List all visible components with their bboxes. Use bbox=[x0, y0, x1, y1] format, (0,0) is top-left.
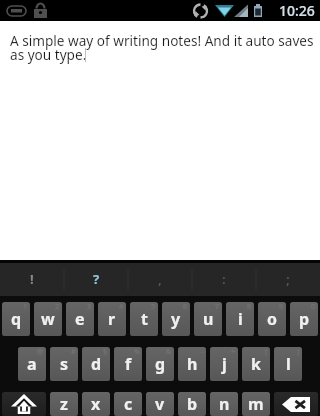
staticText: b bbox=[187, 393, 198, 415]
staticText: A simple way of writing notes! And it au… bbox=[10, 31, 314, 64]
button[interactable]: ? bbox=[64, 263, 128, 296]
staticText: i bbox=[238, 308, 243, 330]
staticText: v bbox=[155, 393, 165, 415]
staticText: ( bbox=[265, 347, 268, 357]
button[interactable]: 4 bbox=[98, 302, 126, 336]
staticText: + bbox=[231, 347, 236, 357]
staticText: p bbox=[299, 308, 310, 330]
staticText: l bbox=[286, 353, 291, 375]
button[interactable]: # bbox=[50, 347, 78, 381]
staticText: # bbox=[71, 347, 76, 357]
button[interactable]: A simple way of writing notes! And it au… bbox=[0, 21, 320, 260]
button[interactable]: z bbox=[50, 392, 78, 416]
button[interactable]: m bbox=[242, 392, 270, 416]
staticText: 9 bbox=[279, 302, 284, 312]
button[interactable]: 7 bbox=[194, 302, 222, 336]
staticText: o bbox=[267, 308, 278, 330]
staticText: 8 bbox=[247, 302, 252, 312]
button[interactable]: c bbox=[114, 392, 142, 416]
staticText: , bbox=[158, 270, 162, 288]
button[interactable]: Shift bbox=[2, 392, 46, 416]
button[interactable]: ( bbox=[242, 347, 270, 381]
staticText: q bbox=[11, 308, 22, 330]
staticText: ? bbox=[93, 270, 100, 288]
staticText: z bbox=[60, 393, 68, 415]
button[interactable]: 8 bbox=[226, 302, 254, 336]
button[interactable]: 2 bbox=[34, 302, 62, 336]
button[interactable]: ! bbox=[0, 263, 64, 296]
staticText: $ bbox=[103, 347, 108, 357]
button[interactable]: 0 bbox=[290, 302, 318, 336]
staticText: 0 bbox=[311, 302, 316, 312]
staticText: h bbox=[187, 353, 198, 375]
button[interactable]: b bbox=[178, 392, 206, 416]
staticText: 3 bbox=[87, 302, 92, 312]
button[interactable]: 3 bbox=[66, 302, 94, 336]
staticText: x bbox=[91, 393, 101, 415]
staticText: 7 bbox=[215, 302, 220, 312]
staticText: 5 bbox=[151, 302, 156, 312]
button[interactable]: $ bbox=[82, 347, 110, 381]
staticText: w bbox=[41, 308, 55, 330]
button[interactable]: n bbox=[210, 392, 238, 416]
button[interactable]: ) bbox=[274, 347, 302, 381]
staticText: d bbox=[91, 353, 102, 375]
button[interactable]: v bbox=[146, 392, 174, 416]
button[interactable]: 9 bbox=[258, 302, 286, 336]
staticText: m bbox=[248, 393, 264, 415]
staticText: ; bbox=[286, 270, 290, 288]
button[interactable]: @ bbox=[18, 347, 46, 381]
staticText: k bbox=[251, 353, 261, 375]
staticText: n bbox=[219, 393, 230, 415]
staticText: @ bbox=[37, 347, 44, 357]
staticText: g bbox=[155, 353, 166, 375]
button[interactable]: 6 bbox=[162, 302, 190, 336]
staticText: & bbox=[166, 347, 172, 357]
button[interactable]: - bbox=[178, 347, 206, 381]
staticText: t bbox=[141, 308, 148, 330]
staticText: c bbox=[124, 393, 133, 415]
staticText: ! bbox=[30, 270, 34, 288]
staticText: f bbox=[125, 353, 132, 375]
button[interactable]: + bbox=[210, 347, 238, 381]
staticText: ) bbox=[297, 347, 300, 357]
button[interactable]: x bbox=[82, 392, 110, 416]
button[interactable]: Backspace bbox=[274, 392, 318, 416]
staticText: 10:26 bbox=[279, 1, 315, 20]
staticText: a bbox=[27, 353, 37, 375]
staticText: 4 bbox=[119, 302, 124, 312]
staticText: j bbox=[222, 353, 227, 375]
staticText: : bbox=[222, 270, 226, 288]
staticText: e bbox=[75, 308, 85, 330]
staticText: 6 bbox=[183, 302, 188, 312]
staticText: 2 bbox=[55, 302, 60, 312]
staticText: y bbox=[171, 308, 181, 330]
staticText: u bbox=[203, 308, 214, 330]
button[interactable]: & bbox=[146, 347, 174, 381]
staticText: % bbox=[134, 347, 140, 357]
button[interactable]: % bbox=[114, 347, 142, 381]
button[interactable]: 5 bbox=[130, 302, 158, 336]
button[interactable]: 1 bbox=[2, 302, 30, 336]
staticText: r bbox=[108, 308, 116, 330]
staticText: s bbox=[60, 353, 69, 375]
staticText: 1 bbox=[23, 302, 28, 312]
